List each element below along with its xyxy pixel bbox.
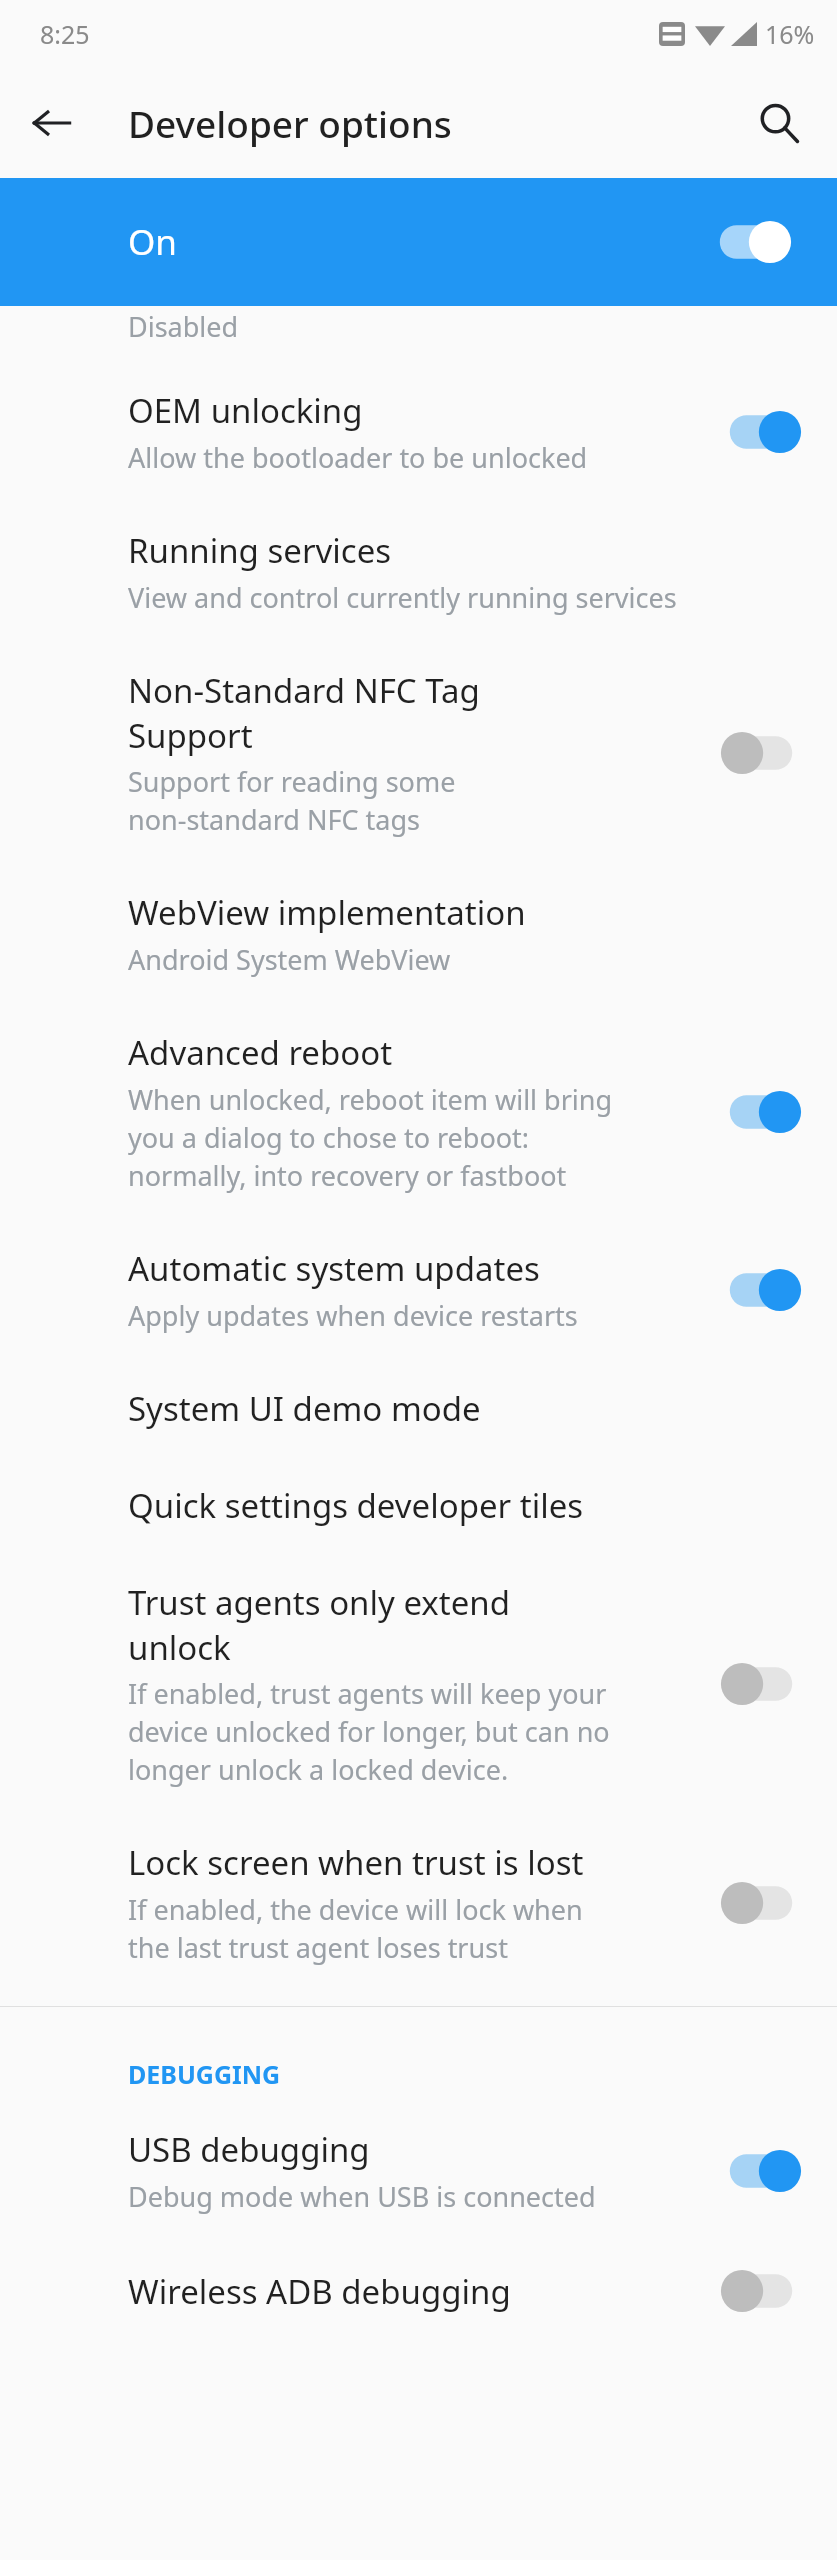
button[interactable]: Non-Standard NFC Tag Support [0,642,837,864]
staticText: 16% [765,17,815,51]
staticText: DEBUGGING [128,2057,281,2091]
button[interactable]: Disabled [0,306,837,362]
staticText: Support for reading some non-standard NF… [128,763,456,838]
staticText: Advanced reboot [128,1030,393,1075]
staticText: Trust agents only extend unlock [128,1580,511,1669]
button[interactable]: Advanced reboot [0,1004,837,1220]
staticText: When unlocked, reboot item will bring yo… [128,1081,613,1194]
staticText: If enabled, the device will lock when th… [128,1891,583,1966]
staticText: 8:25 [40,17,90,51]
button[interactable]: Automatic system updates [0,1220,837,1360]
staticText: System UI demo mode [128,1386,481,1431]
staticText: Lock screen when trust is lost [128,1840,584,1885]
staticText: On [128,218,177,266]
staticText: Disabled [128,308,239,345]
staticText: Allow the bootloader to be unlocked [128,439,588,476]
button[interactable]: On [721,408,801,456]
button[interactable]: Off [721,2267,801,2315]
button[interactable]: OEM unlocking [0,362,837,502]
button[interactable]: On [721,1088,801,1136]
button[interactable]: Search [741,85,817,161]
button[interactable]: Lock screen when trust is lost [0,1814,837,1992]
staticText: WebView implementation [128,890,526,935]
button[interactable]: Quick settings developer tiles [0,1457,837,1554]
button[interactable]: USB debugging [0,2101,837,2241]
staticText: Android System WebView [128,941,451,978]
button[interactable]: On [0,178,837,306]
button[interactable]: Off [721,729,801,777]
button[interactable]: On [721,1266,801,1314]
staticText: Non-Standard NFC Tag Support [128,668,480,757]
staticText: USB debugging [128,2127,370,2172]
button[interactable]: Trust agents only extend unlock [0,1554,837,1814]
staticText: Automatic system updates [128,1246,540,1291]
button[interactable]: Off [721,1879,801,1927]
button[interactable]: Wireless ADB debugging [0,2241,837,2341]
staticText: If enabled, trust agents will keep your … [128,1675,610,1788]
staticText: Running services [128,528,392,573]
staticText: View and control currently running servi… [128,579,677,616]
button[interactable]: On [721,2147,801,2195]
staticText: Quick settings developer tiles [128,1483,584,1528]
button[interactable]: Off [721,1660,801,1708]
button[interactable]: On [711,218,791,266]
staticText: Debug mode when USB is connected [128,2178,596,2215]
button[interactable]: Running services [0,502,837,642]
staticText: Apply updates when device restarts [128,1297,578,1334]
staticText: Developer options [128,98,452,148]
button[interactable]: System UI demo mode [0,1360,837,1457]
button[interactable]: WebView implementation [0,864,837,1004]
staticText: Wireless ADB debugging [128,2269,511,2314]
staticText: OEM unlocking [128,388,363,433]
button[interactable]: Back [16,87,88,159]
